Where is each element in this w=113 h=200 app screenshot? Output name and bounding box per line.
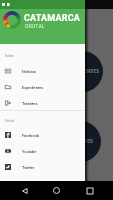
staticText: Social — [5, 119, 15, 123]
button[interactable]: Expedientes — [0, 79, 85, 95]
staticText: Noticias — [22, 69, 37, 74]
staticText: Twitter — [22, 165, 35, 170]
button[interactable]: Facebook — [0, 127, 85, 143]
button[interactable]: Youtube — [0, 143, 85, 159]
button[interactable]: Recents — [81, 182, 98, 199]
staticText: DIGITAL — [25, 24, 45, 30]
button[interactable]: Home — [48, 182, 65, 199]
staticText: CATAMARCA — [24, 13, 81, 24]
staticText: TRAMITES — [68, 138, 93, 145]
staticText: Trámites — [22, 101, 38, 106]
button[interactable]: Trámites — [0, 95, 85, 111]
staticText: Youtube — [22, 149, 37, 154]
staticText: EXPEDIENTES — [66, 68, 99, 75]
button[interactable]: Twitter — [0, 159, 85, 175]
staticText: Expedientes — [22, 85, 44, 90]
button[interactable]: Back — [16, 182, 33, 199]
staticText: Índice — [5, 54, 15, 58]
staticText: Facebook — [22, 133, 39, 138]
button[interactable]: Noticias — [0, 63, 85, 79]
